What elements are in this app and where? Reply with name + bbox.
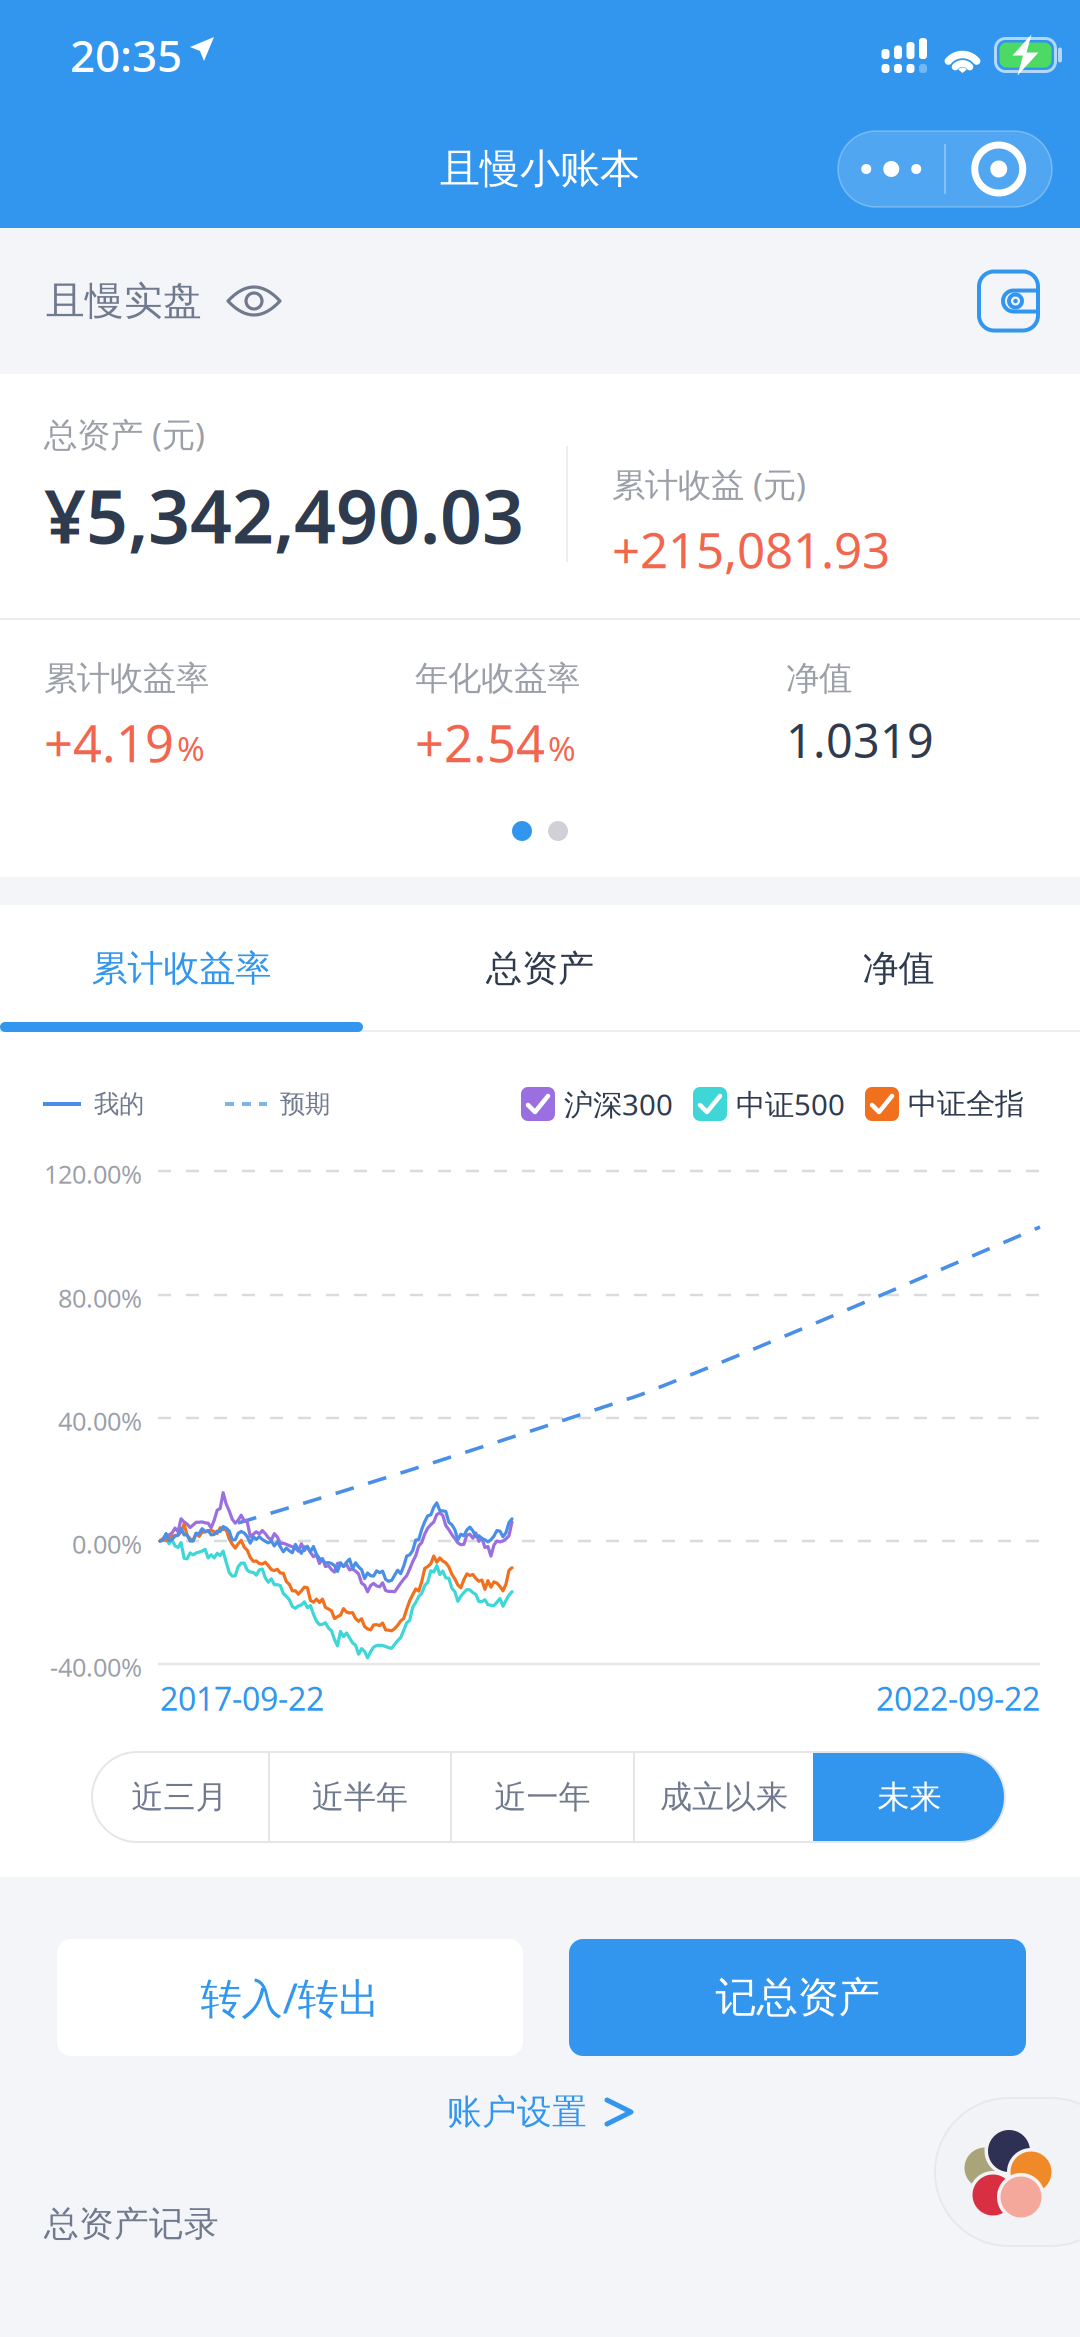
staticText: 中证全指 [908,1086,1024,1122]
staticText: 预期 [280,1088,330,1119]
button[interactable]: 记总资产 [569,1939,1026,2056]
staticText: 2022-09-22 [876,1677,1040,1719]
staticText: 成立以来 [660,1777,788,1817]
button[interactable]: 成立以来 [635,1752,813,1842]
staticText: 0.00% [72,1527,142,1561]
staticText: 累计收益率 [44,658,209,699]
button[interactable]: 中证500 [693,1084,865,1123]
button[interactable]: 中证全指 [865,1086,1040,1122]
button[interactable]: 沪深300 [521,1084,693,1123]
staticText: 80.00% [58,1281,142,1315]
staticText: 净值 [862,946,934,991]
button[interactable]: 累计收益率 [0,905,363,1032]
button[interactable]: 近三月 [91,1752,268,1842]
button[interactable]: 且慢实盘 [46,277,282,325]
staticText: % [177,726,205,770]
button[interactable]: Assistant [935,2098,1080,2246]
staticText: 账户设置 [447,2091,587,2133]
staticText: 总资产 (元) [44,412,205,456]
staticText: 40.00% [58,1404,142,1438]
staticText: 我的 [94,1088,144,1119]
staticText: 2017-09-22 [160,1677,324,1719]
staticText: 累计收益 (元) [612,462,806,506]
staticText: ¥5,342,490.03 [44,466,524,564]
staticText: 记总资产 [715,1972,879,2023]
staticText: 20:35 [70,26,182,84]
button[interactable]: More options [838,131,1052,207]
staticText: 近三月 [131,1777,227,1817]
button[interactable]: 近一年 [452,1752,633,1842]
staticText: 120.00% [44,1157,142,1191]
button[interactable]: 转入/转出 [57,1939,523,2056]
button[interactable]: 近半年 [270,1752,450,1842]
staticText: 净值 [786,658,852,699]
staticText: 总资产记录 [44,2203,219,2245]
button[interactable]: 未来 [813,1752,1006,1842]
staticText: +215,081.93 [612,516,890,582]
staticText: +2.54 [415,709,545,776]
staticText: 累计收益率 [91,946,271,991]
staticText: 且慢小账本 [440,144,640,193]
button[interactable]: 净值 [717,905,1080,1032]
staticText: 沪深300 [564,1084,673,1123]
staticText: 1.0319 [786,709,934,771]
button[interactable]: 总资产 [363,905,717,1032]
staticText: -40.00% [50,1650,142,1684]
staticText: 未来 [877,1777,941,1817]
staticText: 且慢实盘 [46,277,202,325]
staticText: 近半年 [312,1777,408,1817]
staticText: % [548,726,576,770]
staticText: 近一年 [494,1777,590,1817]
staticText: 转入/转出 [200,1970,379,2025]
staticText: 年化收益率 [415,658,580,699]
button[interactable]: Wallet [979,271,1038,330]
button[interactable]: 账户设置 [447,2056,633,2168]
staticText: 中证500 [736,1084,845,1123]
staticText: 总资产 [486,946,594,991]
staticText: +4.19 [44,709,174,776]
